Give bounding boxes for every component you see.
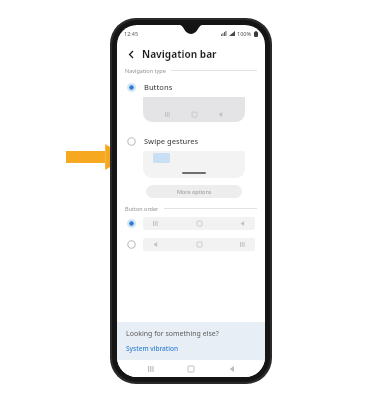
staticText: Button order	[125, 205, 159, 212]
button[interactable]	[143, 97, 245, 122]
button[interactable]: Back	[124, 47, 138, 61]
button[interactable]	[143, 151, 245, 178]
staticText: Swipe gestures	[144, 136, 199, 146]
staticText: Looking for something else?	[126, 329, 219, 339]
staticText: 12:45	[124, 30, 139, 37]
staticText: Navigation bar	[142, 47, 217, 61]
button[interactable]	[117, 235, 265, 253]
button[interactable]: Back	[225, 362, 239, 376]
staticText: 100%	[237, 30, 252, 37]
staticText: System vibration	[126, 344, 179, 353]
other: Pointer arrow	[66, 144, 126, 170]
button[interactable]: Recents	[144, 362, 158, 376]
button[interactable]: System vibration	[126, 344, 179, 353]
button[interactable]: More options	[146, 185, 242, 198]
button[interactable]	[117, 214, 265, 232]
button[interactable]: Home	[184, 362, 198, 376]
staticText: More options	[177, 188, 212, 195]
staticText: Navigation type	[125, 67, 166, 74]
staticText: Buttons	[144, 82, 173, 92]
button[interactable]: Swipe gestures	[117, 131, 265, 151]
button[interactable]: Buttons	[117, 77, 265, 97]
